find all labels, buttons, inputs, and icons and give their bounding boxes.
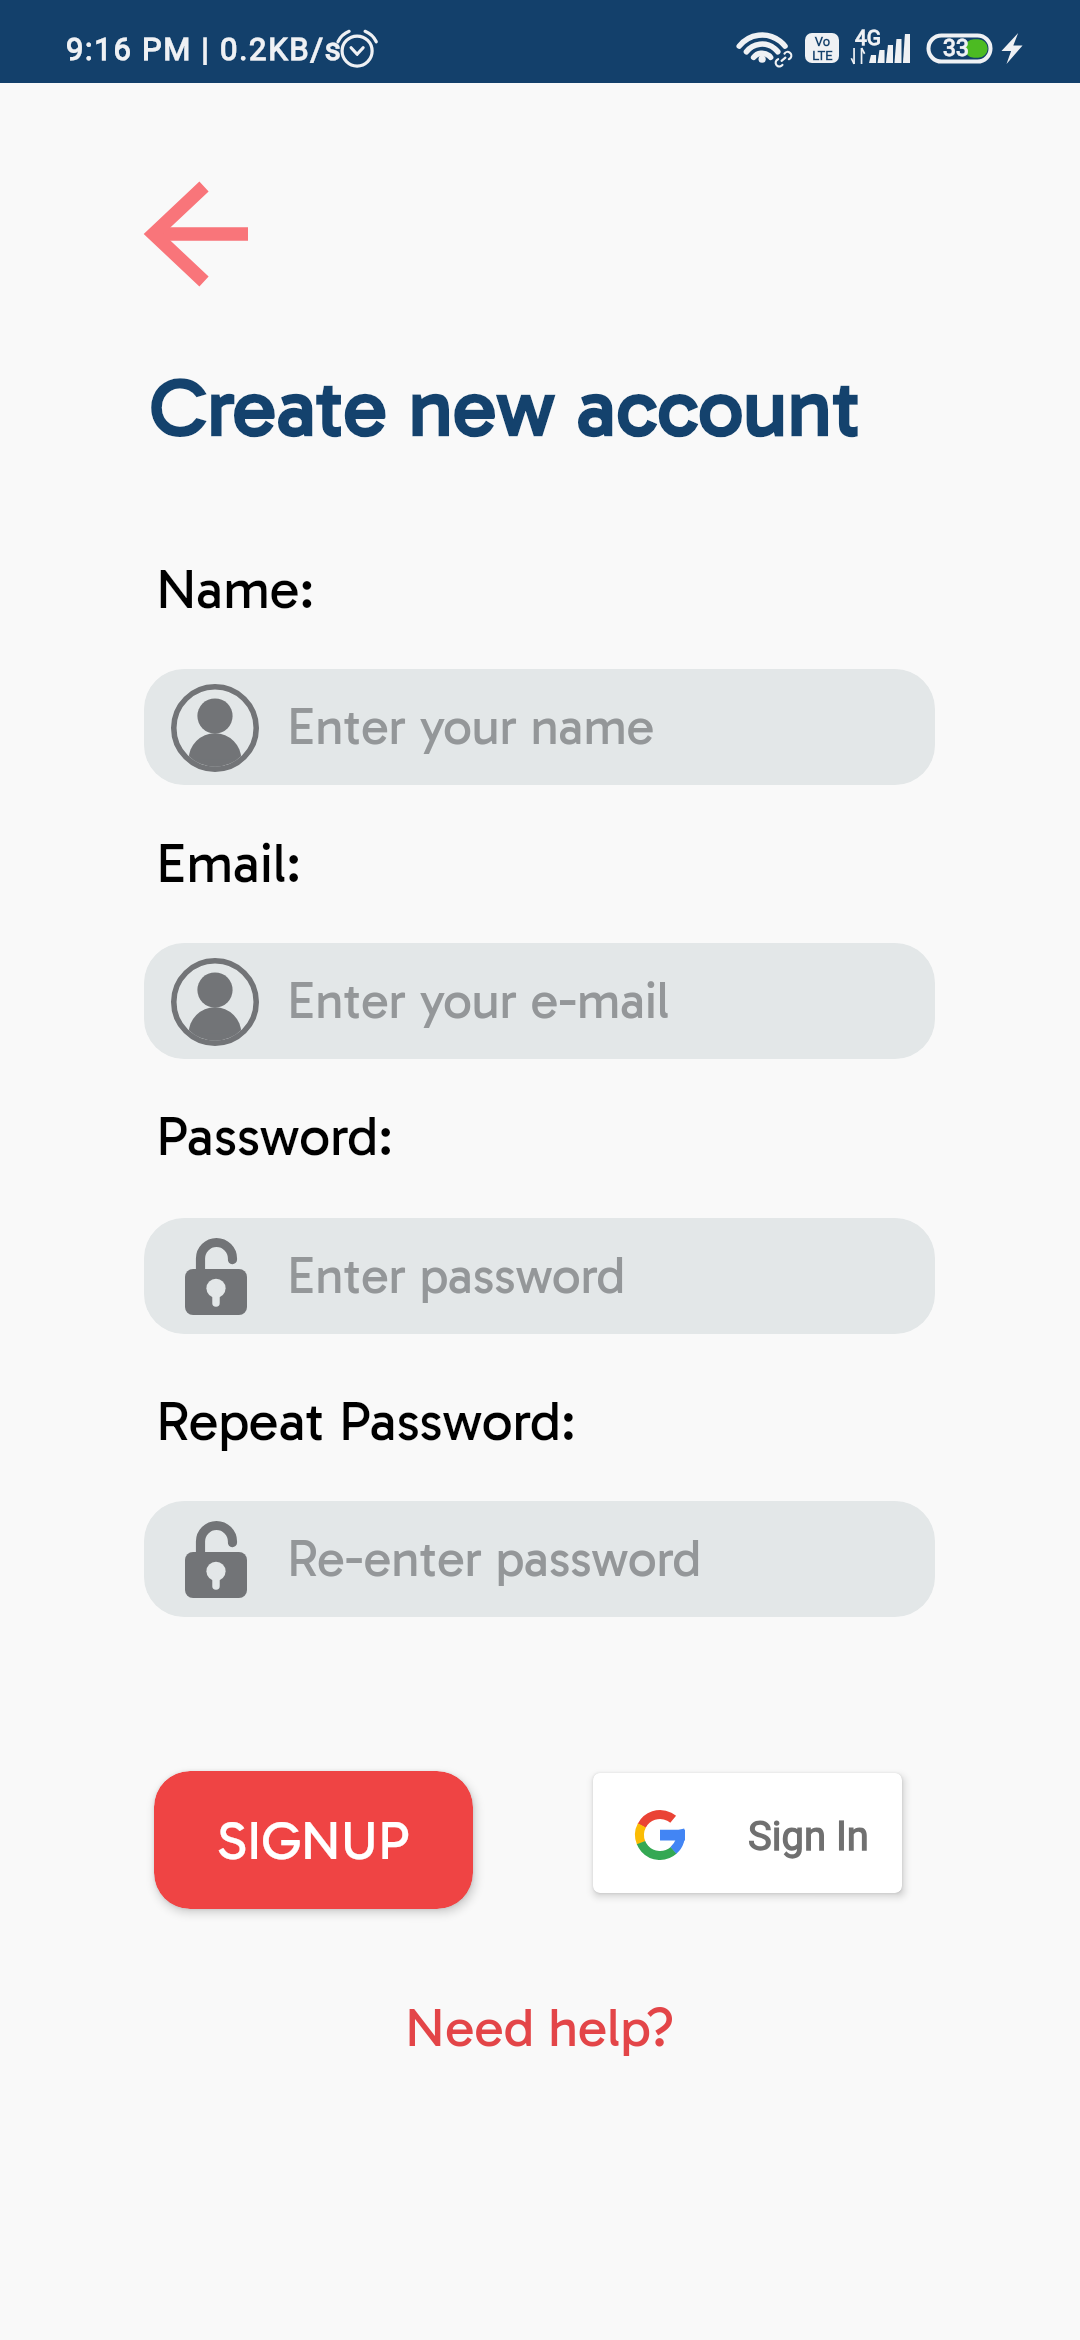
button[interactable]: Need help? — [385, 1983, 695, 2072]
button[interactable]: Enter your name — [144, 669, 935, 785]
staticText: Repeat Password: — [156, 1388, 576, 1454]
staticText: Enter your name — [287, 696, 655, 757]
staticText: Create new account — [150, 360, 861, 456]
staticText: Name: — [156, 556, 315, 622]
button[interactable]: Re-enter password — [144, 1501, 935, 1617]
staticText: 4G — [855, 26, 882, 51]
staticText: Enter your e-mail — [287, 970, 670, 1031]
staticText: Re-enter password — [287, 1528, 702, 1589]
staticText: Password: — [156, 1103, 394, 1169]
button[interactable]: Sign In — [593, 1773, 902, 1893]
staticText: Email: — [156, 830, 302, 896]
staticText: 33 — [943, 35, 969, 62]
staticText: Sign In — [748, 1813, 869, 1860]
button[interactable]: Enter password — [144, 1218, 935, 1334]
button[interactable]: Back — [124, 157, 268, 311]
staticText: 9:16 PM | 0.2KB/s — [66, 31, 343, 67]
staticText: Enter password — [287, 1245, 626, 1306]
button[interactable]: Enter your e-mail — [144, 943, 935, 1059]
staticText: SIGNUP — [217, 1808, 410, 1873]
button[interactable]: SIGNUP — [154, 1771, 473, 1909]
staticText: Vo LTE — [812, 34, 833, 63]
